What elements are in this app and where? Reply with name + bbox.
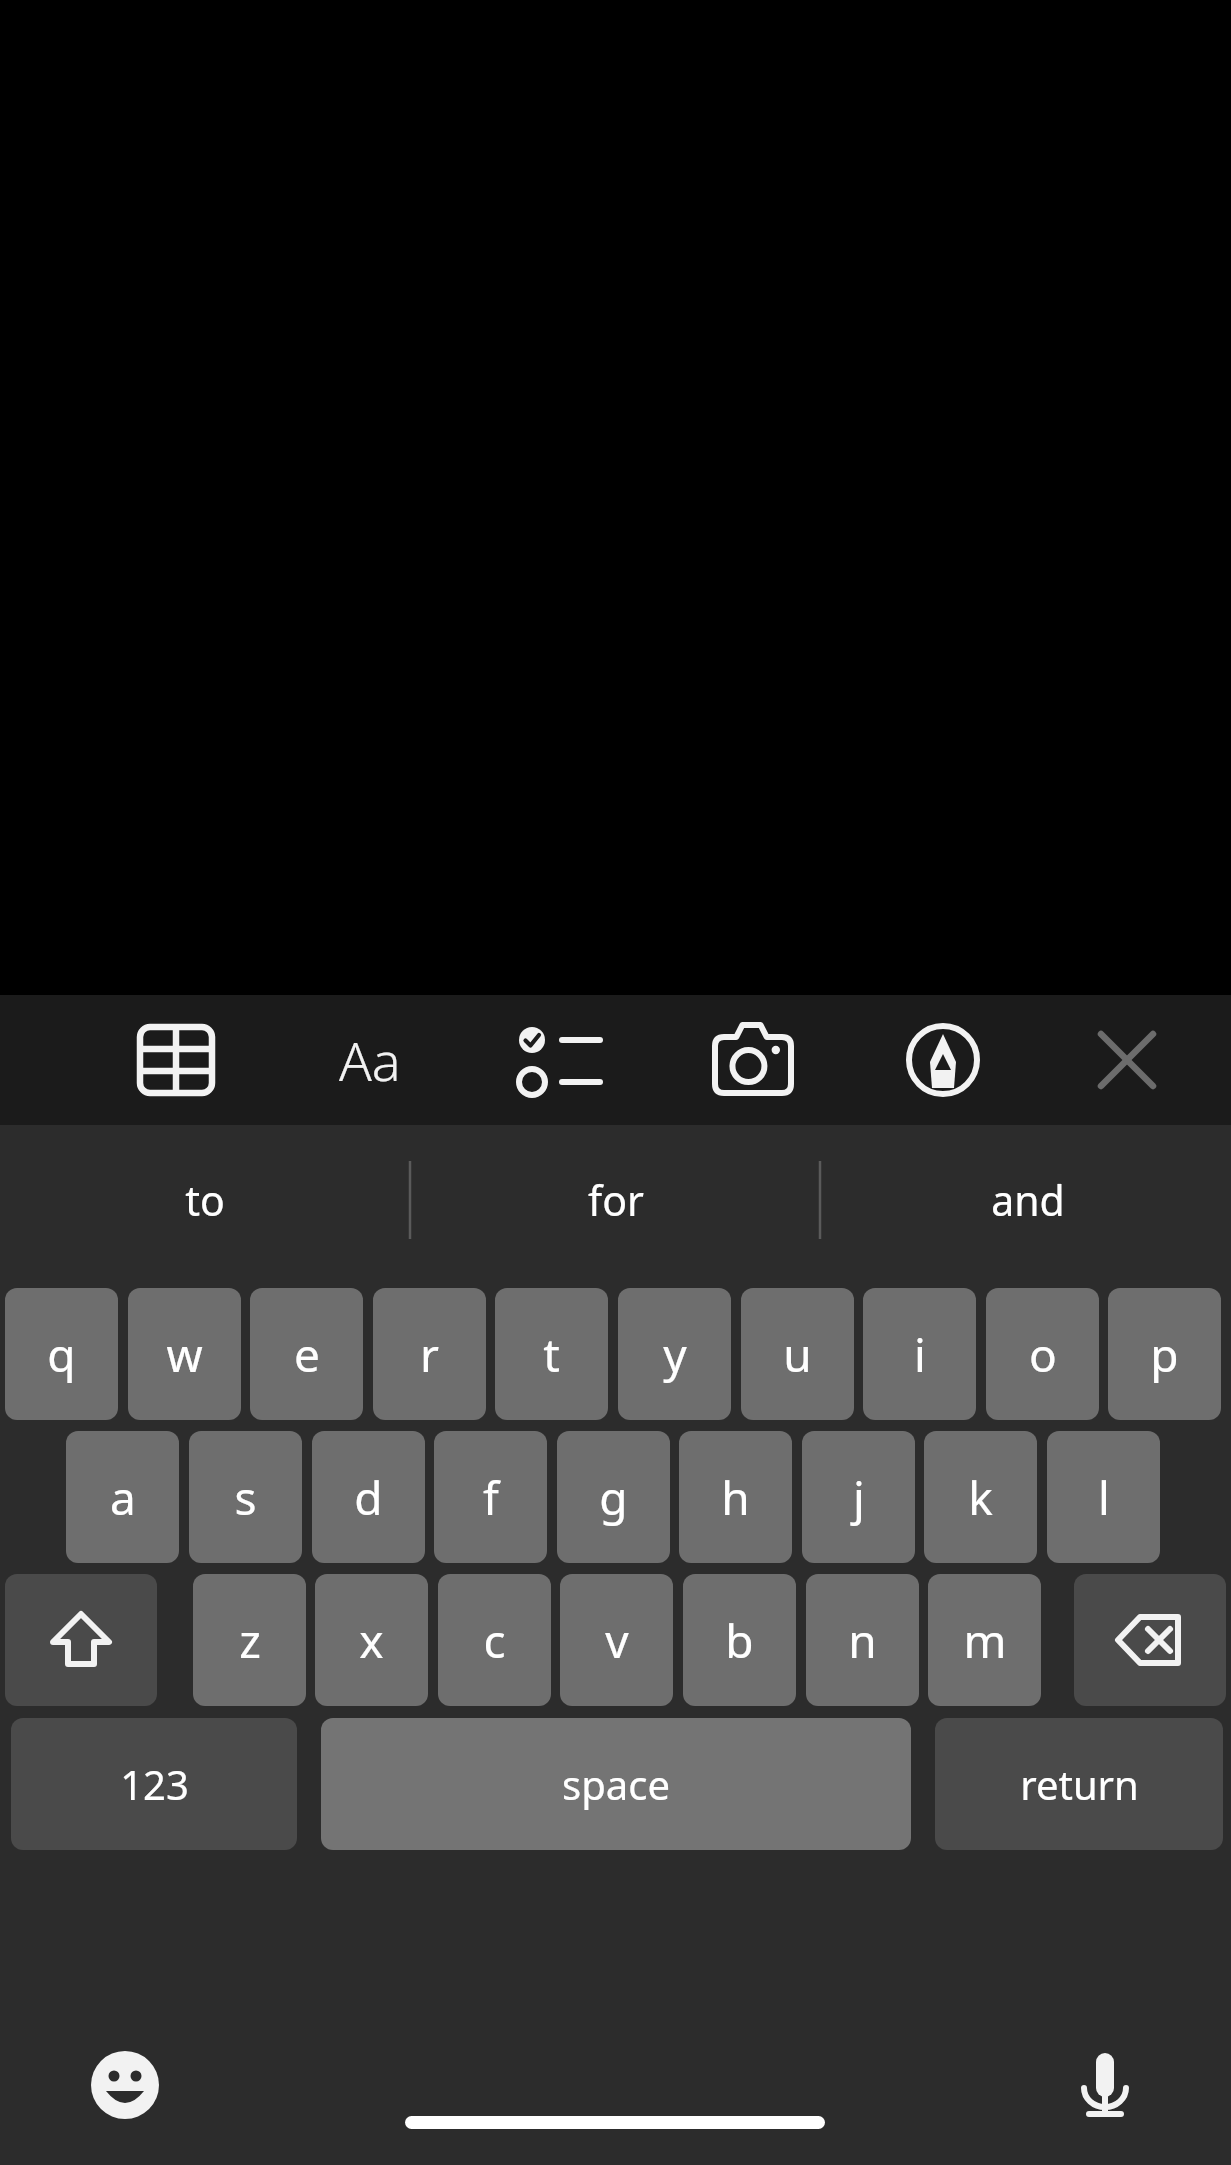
button[interactable]: x bbox=[315, 1574, 428, 1706]
staticText: v bbox=[605, 1609, 629, 1672]
staticText: h bbox=[721, 1466, 750, 1529]
staticText: space bbox=[562, 1757, 670, 1811]
button[interactable]: Camera bbox=[683, 1007, 823, 1113]
staticText: z bbox=[239, 1609, 261, 1672]
button[interactable]: Markup bbox=[873, 1007, 1013, 1113]
button[interactable]: Emoji bbox=[60, 2030, 190, 2140]
button[interactable]: y bbox=[618, 1288, 731, 1420]
staticText: s bbox=[234, 1466, 257, 1529]
staticText: d bbox=[354, 1466, 383, 1529]
button[interactable]: 123 bbox=[11, 1718, 297, 1850]
button[interactable]: f bbox=[434, 1431, 547, 1563]
staticText: w bbox=[166, 1323, 203, 1386]
button[interactable]: h bbox=[679, 1431, 792, 1563]
button[interactable]: n bbox=[806, 1574, 919, 1706]
button[interactable]: return bbox=[935, 1718, 1223, 1850]
staticText: e bbox=[294, 1323, 320, 1386]
staticText: y bbox=[663, 1323, 687, 1386]
button[interactable]: a bbox=[66, 1431, 179, 1563]
button[interactable]: c bbox=[438, 1574, 551, 1706]
button[interactable]: e bbox=[250, 1288, 363, 1420]
button[interactable]: p bbox=[1108, 1288, 1221, 1420]
button[interactable]: Aa bbox=[295, 1005, 445, 1115]
button[interactable]: g bbox=[557, 1431, 670, 1563]
button[interactable]: for bbox=[426, 1125, 806, 1275]
button[interactable]: b bbox=[683, 1574, 796, 1706]
button[interactable]: l bbox=[1047, 1431, 1160, 1563]
staticText: for bbox=[588, 1172, 644, 1228]
staticText: b bbox=[725, 1609, 754, 1672]
button[interactable]: v bbox=[560, 1574, 673, 1706]
staticText: Aa bbox=[339, 1023, 401, 1097]
staticText: q bbox=[47, 1323, 76, 1386]
button[interactable]: d bbox=[312, 1431, 425, 1563]
button[interactable]: q bbox=[5, 1288, 118, 1420]
staticText: return bbox=[1020, 1757, 1139, 1811]
staticText: j bbox=[853, 1466, 865, 1529]
button[interactable]: Shift bbox=[5, 1574, 157, 1706]
button[interactable]: Close keyboard bbox=[1057, 1007, 1197, 1113]
staticText: and bbox=[991, 1172, 1065, 1228]
button[interactable]: j bbox=[802, 1431, 915, 1563]
staticText: f bbox=[483, 1466, 499, 1529]
staticText: u bbox=[783, 1323, 812, 1386]
button[interactable]: Checklist bbox=[490, 1007, 630, 1113]
button[interactable]: w bbox=[128, 1288, 241, 1420]
button[interactable]: space bbox=[321, 1718, 911, 1850]
button[interactable]: m bbox=[928, 1574, 1041, 1706]
button[interactable]: r bbox=[373, 1288, 486, 1420]
staticText: t bbox=[543, 1323, 560, 1386]
button[interactable]: Backspace bbox=[1074, 1574, 1226, 1706]
button[interactable]: Dictation bbox=[1040, 2030, 1170, 2140]
button[interactable]: k bbox=[924, 1431, 1037, 1563]
staticText: 123 bbox=[120, 1757, 189, 1811]
staticText: m bbox=[963, 1609, 1007, 1672]
button[interactable]: Text format bbox=[300, 1007, 440, 1113]
staticText: n bbox=[848, 1609, 877, 1672]
staticText: c bbox=[483, 1609, 506, 1672]
staticText: k bbox=[968, 1466, 993, 1529]
staticText: p bbox=[1150, 1323, 1179, 1386]
staticText: l bbox=[1098, 1466, 1110, 1529]
button[interactable]: to bbox=[15, 1125, 395, 1275]
button[interactable]: i bbox=[863, 1288, 976, 1420]
staticText: i bbox=[914, 1323, 926, 1386]
staticText: a bbox=[110, 1466, 136, 1529]
button[interactable]: u bbox=[741, 1288, 854, 1420]
button[interactable]: s bbox=[189, 1431, 302, 1563]
button[interactable]: t bbox=[495, 1288, 608, 1420]
staticText: o bbox=[1029, 1323, 1057, 1386]
staticText: to bbox=[185, 1172, 225, 1228]
staticText: r bbox=[420, 1323, 439, 1386]
button[interactable]: o bbox=[986, 1288, 1099, 1420]
staticText: x bbox=[359, 1609, 384, 1672]
button[interactable]: Table bbox=[106, 1007, 246, 1113]
button[interactable]: and bbox=[838, 1125, 1218, 1275]
button[interactable]: z bbox=[193, 1574, 306, 1706]
staticText: g bbox=[599, 1466, 628, 1529]
